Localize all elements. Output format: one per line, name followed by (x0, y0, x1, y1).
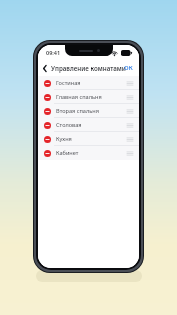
staticText: Вторая спальня (56, 107, 99, 115)
button[interactable]: Удалить (44, 94, 51, 101)
button[interactable]: Переместить (126, 80, 133, 87)
button[interactable]: ОК (118, 60, 139, 76)
staticText: Гостиная (56, 79, 81, 87)
button[interactable]: Удалить (38, 90, 139, 104)
button[interactable]: Удалить (44, 122, 51, 129)
staticText: Кухня (56, 135, 72, 143)
button[interactable]: Назад (38, 60, 52, 76)
button[interactable]: Удалить (38, 146, 139, 160)
staticText: Главная спальня (56, 93, 102, 101)
button[interactable]: Удалить (38, 76, 139, 90)
button[interactable]: Удалить (44, 108, 51, 115)
button[interactable]: Удалить (38, 104, 139, 118)
button[interactable]: Удалить (38, 132, 139, 146)
button[interactable]: Переместить (126, 136, 133, 143)
button[interactable]: Удалить (44, 150, 51, 157)
button[interactable]: Удалить (44, 136, 51, 143)
staticText: 09:41 (46, 49, 61, 56)
staticText: Управление комнатами (51, 64, 126, 72)
button[interactable]: Переместить (126, 108, 133, 115)
button[interactable]: Переместить (126, 94, 133, 101)
staticText: ОК (124, 64, 133, 72)
button[interactable]: Переместить (126, 122, 133, 129)
staticText: Кабинет (56, 149, 79, 157)
button[interactable]: Удалить (44, 80, 51, 87)
button[interactable]: Переместить (126, 150, 133, 157)
staticText: Столовая (56, 121, 82, 129)
button[interactable]: Удалить (38, 118, 139, 132)
